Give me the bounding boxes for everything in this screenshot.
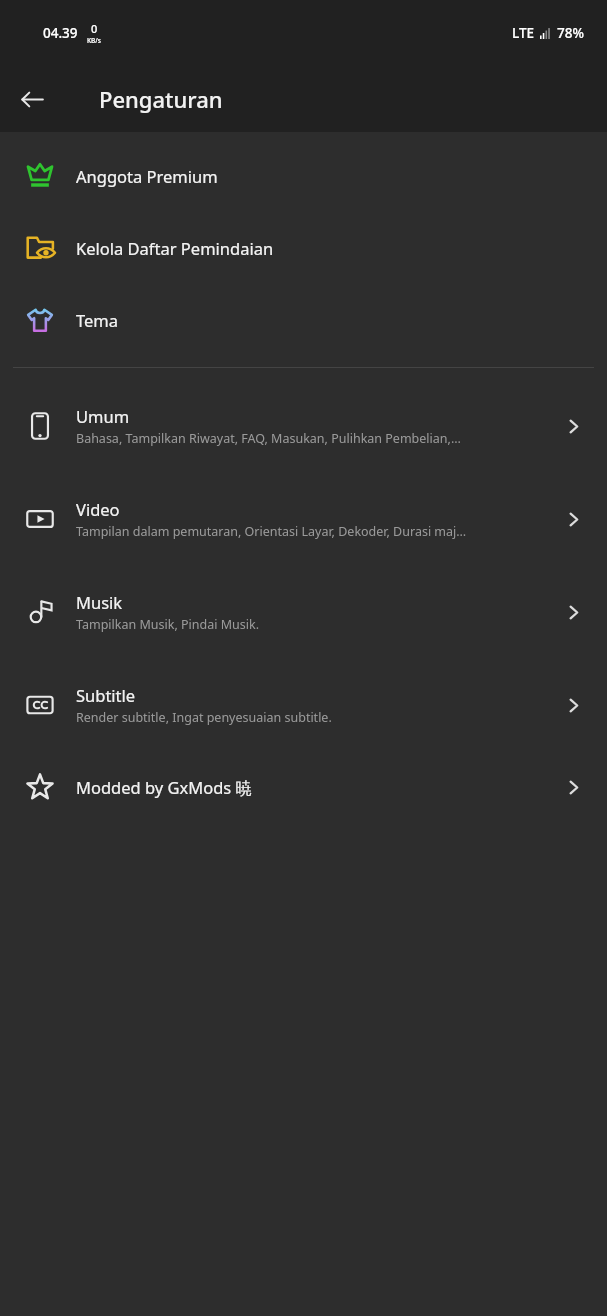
staticText: Musik	[76, 591, 123, 613]
staticText: Modded by GxMods 暁	[76, 776, 253, 799]
other: Open	[558, 504, 588, 534]
other: Open	[558, 597, 588, 627]
button[interactable]: Back	[8, 75, 56, 123]
button[interactable]: Musik	[0, 565, 607, 658]
staticText: Render subtitle, Ingat penyesuaian subti…	[76, 709, 332, 726]
staticText: 04.39	[43, 24, 78, 42]
staticText: KB/s	[87, 36, 102, 45]
staticText: 78%	[557, 24, 584, 42]
other: Open	[558, 772, 588, 802]
staticText: Tema	[76, 309, 119, 331]
other: Open	[558, 411, 588, 441]
staticText: Tampilkan Musik, Pindai Musik.	[76, 616, 259, 633]
staticText: Kelola Daftar Pemindaian	[76, 237, 274, 259]
staticText: LTE	[512, 24, 535, 42]
staticText: Umum	[76, 405, 130, 427]
button[interactable]: Kelola Daftar Pemindaian	[0, 212, 607, 284]
button[interactable]: Tema	[0, 284, 607, 356]
button[interactable]: Anggota Premium	[0, 140, 607, 212]
staticText: Tampilan dalam pemutaran, Orientasi Laya…	[76, 523, 467, 540]
button[interactable]: Video	[0, 472, 607, 565]
staticText: Video	[76, 498, 120, 520]
staticText: 0	[91, 21, 98, 36]
staticText: Pengaturan	[99, 84, 223, 114]
other: Open	[558, 690, 588, 720]
button[interactable]: Subtitle	[0, 658, 607, 751]
button[interactable]: Umum	[0, 379, 607, 472]
staticText: Anggota Premium	[76, 165, 218, 187]
button[interactable]: Modded by GxMods 暁	[0, 751, 607, 823]
staticText: Subtitle	[76, 684, 136, 706]
staticText: Bahasa, Tampilkan Riwayat, FAQ, Masukan,…	[76, 430, 461, 447]
